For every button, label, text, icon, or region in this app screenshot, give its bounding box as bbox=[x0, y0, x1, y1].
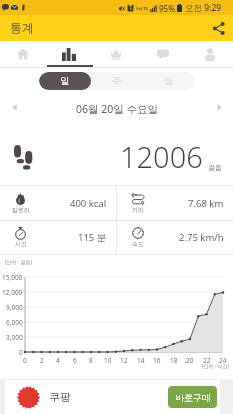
staticText: 16 bbox=[153, 356, 161, 365]
staticText: 일 bbox=[60, 75, 70, 87]
button[interactable]: 일 bbox=[39, 72, 91, 90]
staticText: VoLTE bbox=[136, 6, 148, 11]
staticText: 400 kcal bbox=[70, 197, 107, 210]
button[interactable]: Share bbox=[208, 18, 228, 38]
staticText: 9,000 bbox=[6, 303, 23, 312]
button[interactable]: 속도 bbox=[117, 221, 233, 254]
staticText: 14 bbox=[137, 356, 145, 365]
staticText: 주 bbox=[112, 75, 122, 87]
staticText: 15,000 bbox=[2, 273, 23, 282]
staticText: 6 bbox=[73, 356, 77, 365]
staticText: 18 bbox=[170, 356, 178, 365]
staticText: 쿠팡 bbox=[49, 390, 71, 404]
button[interactable]: Next day bbox=[210, 98, 228, 116]
staticText: 0 bbox=[19, 348, 23, 357]
button[interactable]: Chat bbox=[139, 41, 186, 67]
staticText: 거리 bbox=[132, 206, 144, 214]
staticText: 통계 bbox=[10, 20, 34, 35]
staticText: 2 bbox=[40, 356, 44, 365]
button[interactable]: 거리 bbox=[117, 186, 233, 220]
staticText: 06월 20일 수요일 bbox=[76, 102, 158, 116]
button[interactable]: Statistics bbox=[46, 41, 92, 67]
staticText: 칼로리 bbox=[12, 206, 30, 214]
staticText: 3,000 bbox=[6, 333, 23, 342]
staticText: 12 bbox=[120, 356, 128, 365]
staticText: (단위 : 시간) bbox=[202, 363, 229, 370]
staticText: 속도 bbox=[132, 240, 144, 248]
button[interactable]: Profile bbox=[186, 41, 233, 67]
staticText: 4 bbox=[56, 356, 60, 365]
staticText: 24 bbox=[219, 356, 227, 365]
staticText: 10 bbox=[104, 356, 112, 365]
button[interactable]: 시간 bbox=[0, 221, 116, 254]
button[interactable]: 칼로리 bbox=[0, 186, 116, 220]
staticText: 22 bbox=[203, 356, 211, 365]
button[interactable]: Ranking bbox=[92, 41, 139, 67]
staticText: 20 bbox=[186, 356, 194, 365]
button[interactable]: 월 bbox=[143, 72, 195, 90]
staticText: 바로구매 bbox=[175, 392, 211, 403]
staticText: 6,000 bbox=[6, 318, 23, 327]
button[interactable]: 쿠팡 bbox=[5, 380, 220, 414]
button[interactable]: Home bbox=[0, 41, 46, 67]
staticText: 7.68 km bbox=[188, 197, 224, 210]
button[interactable]: Previous day bbox=[5, 98, 23, 116]
staticText: 월 bbox=[164, 75, 174, 87]
staticText: (단위 : 걸음) bbox=[5, 259, 32, 266]
staticText: 0 bbox=[23, 356, 27, 365]
staticText: 115 분 bbox=[78, 231, 107, 244]
staticText: 12006 bbox=[120, 137, 203, 176]
staticText: 2.75 km/h bbox=[179, 231, 224, 244]
staticText: 95% bbox=[159, 3, 175, 14]
staticText: 12,000 bbox=[2, 288, 23, 297]
staticText: 8 bbox=[89, 356, 93, 365]
staticText: 오전 9:29 bbox=[185, 2, 222, 14]
staticText: 시간 bbox=[15, 240, 27, 248]
staticText: 걸음 bbox=[208, 163, 222, 172]
button[interactable]: 바로구매 bbox=[168, 386, 217, 408]
